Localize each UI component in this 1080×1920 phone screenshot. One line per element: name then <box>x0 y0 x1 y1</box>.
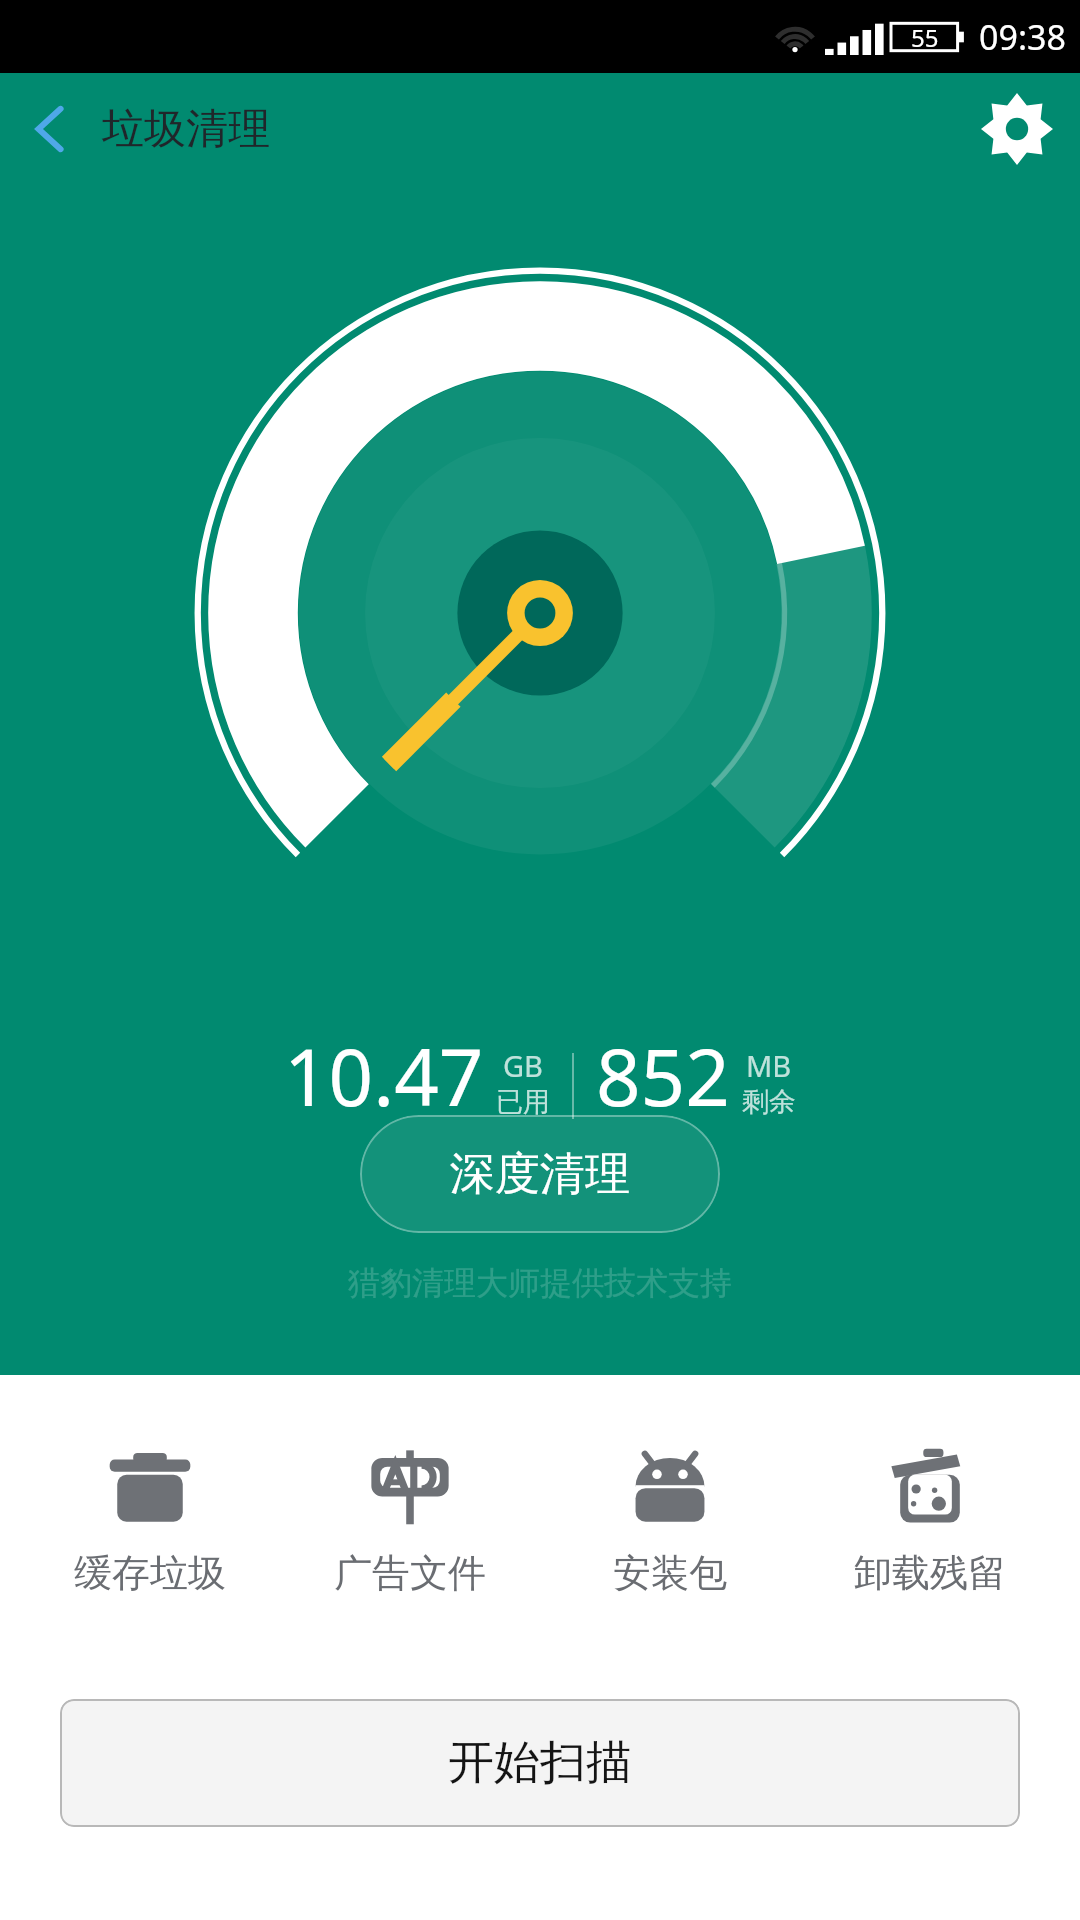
button[interactable]: 深度清理 <box>360 1115 720 1233</box>
button[interactable]: Settings <box>954 73 1080 185</box>
button[interactable]: 缓存垃圾 <box>40 1437 260 1603</box>
button[interactable]: 开始扫描 <box>60 1699 1020 1827</box>
staticText: 剩余 <box>742 1085 796 1119</box>
staticText: 安装包 <box>613 1549 727 1597</box>
staticText: 852 <box>596 1023 730 1129</box>
staticText: 猎豹清理大师提供技术支持 <box>348 1263 732 1303</box>
staticText: MB <box>746 1046 792 1085</box>
staticText: 开始扫描 <box>448 1734 632 1792</box>
button[interactable]: 安装包 <box>560 1437 780 1603</box>
staticText: 已用 <box>496 1085 550 1119</box>
staticText: GB <box>503 1046 543 1085</box>
staticText: 09:38 <box>979 14 1066 60</box>
staticText: 深度清理 <box>450 1146 630 1203</box>
button[interactable]: Back <box>0 78 102 180</box>
button[interactable]: 广告文件 <box>300 1437 520 1603</box>
button[interactable]: 卸载残留 <box>820 1437 1040 1603</box>
staticText: 缓存垃圾 <box>74 1549 226 1597</box>
staticText: 垃圾清理 <box>102 103 270 156</box>
staticText: 广告文件 <box>334 1549 486 1597</box>
staticText: 10.47 <box>284 1023 484 1129</box>
staticText: 55 <box>911 21 939 54</box>
staticText: 卸载残留 <box>854 1549 1006 1597</box>
